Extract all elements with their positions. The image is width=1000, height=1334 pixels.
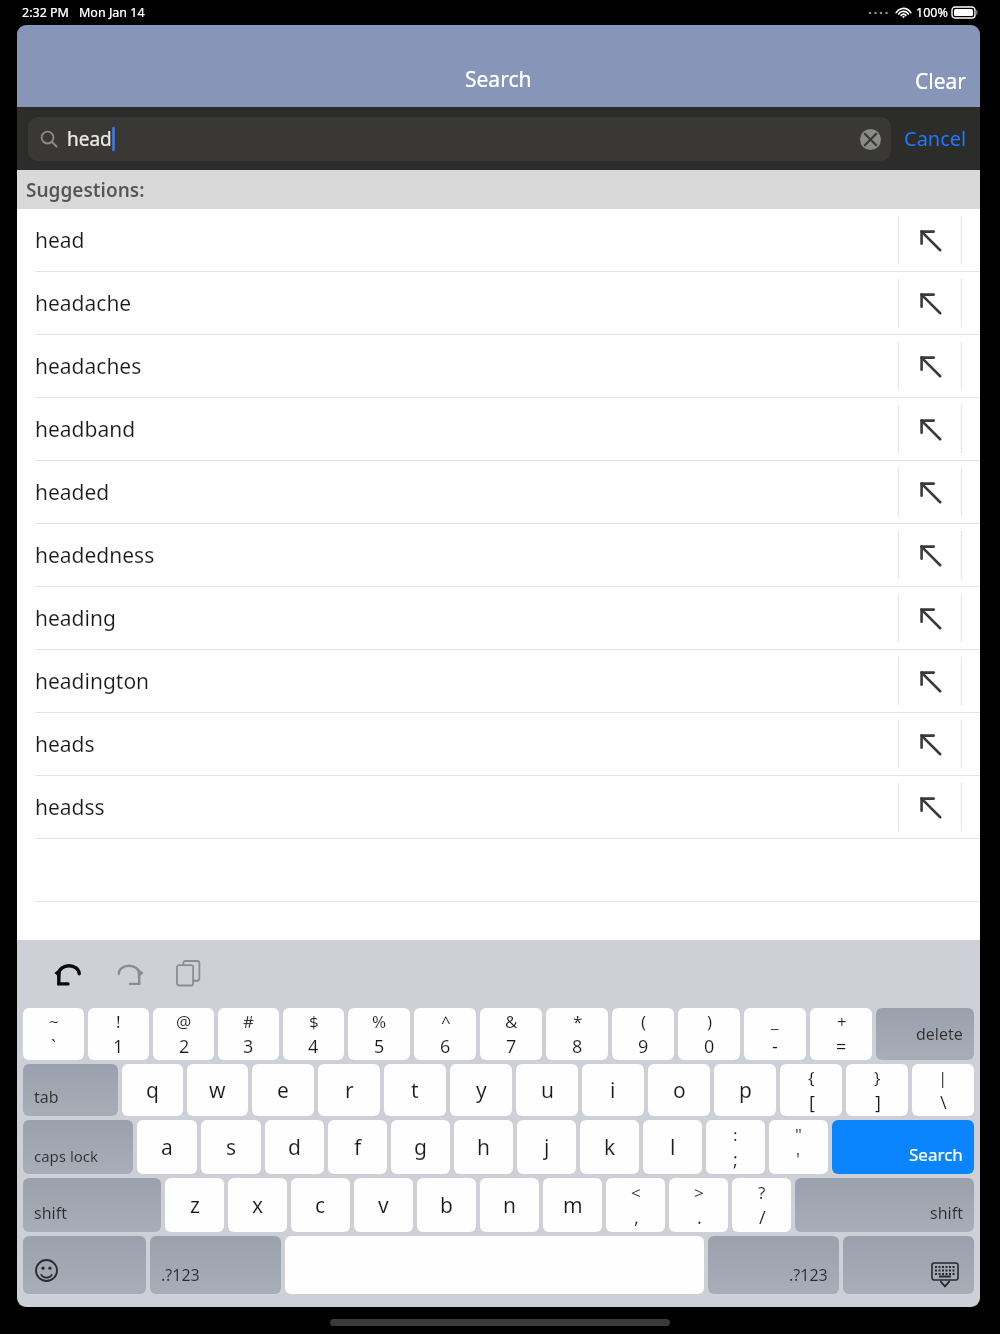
button[interactable]: s xyxy=(201,1120,261,1174)
button[interactable]: * xyxy=(546,1008,608,1060)
button[interactable]: # xyxy=(218,1008,279,1060)
button[interactable]: p xyxy=(714,1064,776,1116)
button[interactable]: Paste xyxy=(163,947,215,999)
button[interactable]: head xyxy=(17,209,980,271)
button[interactable]: delete xyxy=(876,1008,974,1060)
button[interactable]: u xyxy=(516,1064,578,1116)
button[interactable]: v xyxy=(354,1178,413,1232)
button[interactable]: ( xyxy=(612,1008,674,1060)
button[interactable]: i xyxy=(582,1064,644,1116)
button[interactable]: shift xyxy=(795,1178,974,1232)
button[interactable]: b xyxy=(417,1178,476,1232)
button[interactable]: headband xyxy=(17,398,980,460)
button[interactable]: Cancel xyxy=(891,115,980,162)
button[interactable]: t xyxy=(384,1064,446,1116)
button[interactable]: Hide keyboard xyxy=(843,1236,974,1294)
button[interactable]: | xyxy=(912,1064,974,1116)
button[interactable]: ^ xyxy=(414,1008,476,1060)
button[interactable]: e xyxy=(252,1064,314,1116)
button[interactable]: n xyxy=(480,1178,539,1232)
button[interactable]: Emoji xyxy=(23,1236,146,1294)
button[interactable]: headaches xyxy=(17,335,980,397)
button[interactable]: ) xyxy=(678,1008,740,1060)
staticText: Cancel xyxy=(904,125,967,152)
button[interactable]: headed xyxy=(17,461,980,523)
button[interactable]: < xyxy=(606,1178,665,1232)
staticText: 1 xyxy=(113,1034,124,1059)
button[interactable]: Undo xyxy=(43,947,95,999)
button[interactable]: Redo xyxy=(103,947,155,999)
staticText: headband xyxy=(35,415,898,444)
button[interactable]: & xyxy=(480,1008,542,1060)
button[interactable]: d xyxy=(265,1120,324,1174)
staticText: Mon Jan 14 xyxy=(79,4,145,21)
button[interactable]: a xyxy=(137,1120,197,1174)
button[interactable]: Insert heading xyxy=(898,587,962,649)
button[interactable]: { xyxy=(780,1064,842,1116)
button[interactable]: Insert headss xyxy=(898,776,962,838)
button[interactable]: .?123 xyxy=(150,1236,281,1294)
button[interactable]: > xyxy=(669,1178,728,1232)
staticText: q xyxy=(146,1076,159,1105)
button[interactable]: ~ xyxy=(23,1008,84,1060)
button[interactable]: heading xyxy=(17,587,980,649)
button[interactable]: y xyxy=(450,1064,512,1116)
button[interactable]: + xyxy=(810,1008,872,1060)
button[interactable]: Insert headed xyxy=(898,461,962,523)
button[interactable]: Search xyxy=(832,1120,974,1174)
button[interactable]: Insert heads xyxy=(898,713,962,775)
button[interactable]: headache xyxy=(17,272,980,334)
staticText: * xyxy=(573,1010,583,1033)
button[interactable]: Clear xyxy=(895,55,980,107)
button[interactable]: l xyxy=(643,1120,702,1174)
button[interactable]: _ xyxy=(744,1008,806,1060)
button[interactable]: headss xyxy=(17,776,980,838)
button[interactable]: Insert headington xyxy=(898,650,962,712)
staticText: j xyxy=(544,1133,550,1162)
button[interactable]: w xyxy=(187,1064,248,1116)
button[interactable]: Insert headband xyxy=(898,398,962,460)
button[interactable]: .?123 xyxy=(708,1236,839,1294)
button[interactable]: z xyxy=(165,1178,224,1232)
button[interactable]: : xyxy=(706,1120,765,1174)
button[interactable]: h xyxy=(454,1120,513,1174)
button[interactable]: m xyxy=(543,1178,602,1232)
button[interactable]: f xyxy=(328,1120,387,1174)
button[interactable]: shift xyxy=(23,1178,161,1232)
button[interactable]: Insert headaches xyxy=(898,335,962,397)
button[interactable]: $ xyxy=(283,1008,344,1060)
staticText: { xyxy=(808,1066,815,1089)
button[interactable]: heads xyxy=(17,713,980,775)
staticText: 7 xyxy=(506,1034,517,1059)
staticText: shift xyxy=(34,1202,67,1224)
button[interactable]: head xyxy=(28,117,891,161)
button[interactable]: " xyxy=(769,1120,828,1174)
button[interactable]: caps lock xyxy=(23,1120,133,1174)
staticText: headedness xyxy=(35,541,898,570)
button[interactable]: q xyxy=(122,1064,183,1116)
button[interactable]: Insert head xyxy=(898,209,962,271)
staticText: x xyxy=(252,1191,264,1220)
button[interactable]: r xyxy=(318,1064,380,1116)
button[interactable]: % xyxy=(348,1008,410,1060)
button[interactable]: k xyxy=(580,1120,639,1174)
button[interactable]: Clear text xyxy=(853,122,887,156)
button[interactable]: } xyxy=(846,1064,908,1116)
button[interactable]: headedness xyxy=(17,524,980,586)
staticText: ) xyxy=(707,1010,713,1033)
button[interactable]: @ xyxy=(153,1008,214,1060)
button[interactable]: ? xyxy=(732,1178,791,1232)
button[interactable]: j xyxy=(517,1120,576,1174)
button[interactable]: o xyxy=(648,1064,710,1116)
button[interactable]: x xyxy=(228,1178,287,1232)
button[interactable]: c xyxy=(291,1178,350,1232)
button[interactable]: ! xyxy=(88,1008,149,1060)
button[interactable]: Insert headache xyxy=(898,272,962,334)
staticText: c xyxy=(315,1191,326,1220)
button[interactable]: headington xyxy=(17,650,980,712)
button[interactable]: tab xyxy=(23,1064,118,1116)
button[interactable]: g xyxy=(391,1120,450,1174)
button[interactable]: Insert headedness xyxy=(898,524,962,586)
staticText: s xyxy=(226,1133,237,1162)
